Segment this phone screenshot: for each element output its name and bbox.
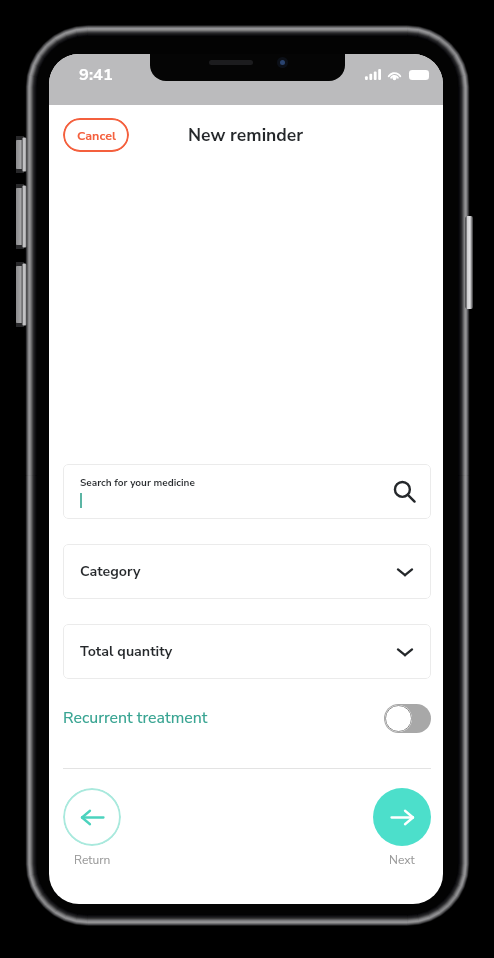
other: Search: [394, 481, 415, 502]
button[interactable]: Return: [63, 788, 121, 868]
staticText: Category: [80, 562, 141, 581]
button[interactable]: Recurrent treatment toggle: [384, 704, 431, 733]
button[interactable]: Total quantity: [63, 624, 431, 679]
staticText: New reminder: [188, 123, 304, 147]
button[interactable]: Cancel: [63, 118, 129, 152]
other: Return: [63, 788, 121, 846]
button[interactable]: Recurrent treatment: [63, 694, 431, 742]
button[interactable]: Category: [63, 544, 431, 599]
button[interactable]: Search for your medicine: [63, 464, 431, 519]
staticText: Return: [74, 852, 111, 868]
staticText: Recurrent treatment: [63, 707, 208, 729]
staticText: Cancel: [77, 127, 116, 144]
staticText: Total quantity: [80, 642, 173, 661]
button[interactable]: Next: [373, 788, 431, 868]
staticText: Next: [389, 852, 415, 868]
staticText: 9:41: [79, 63, 113, 86]
staticText: Search for your medicine: [80, 476, 195, 490]
other: Next: [373, 788, 431, 846]
